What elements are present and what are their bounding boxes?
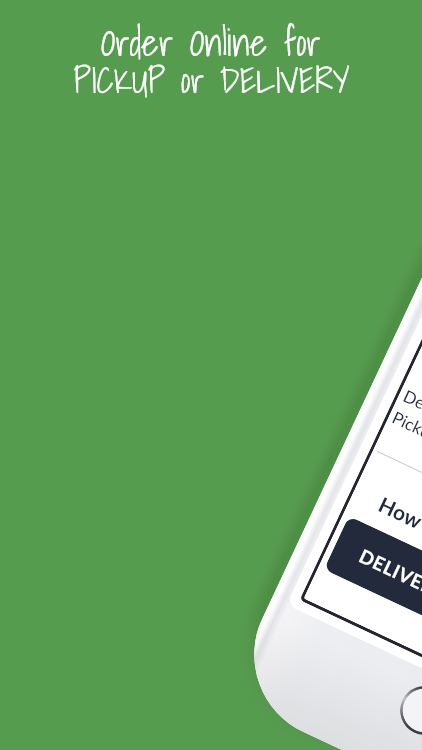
staticText: Delivery & Curbside xyxy=(400,385,422,467)
button[interactable]: Home xyxy=(393,678,422,742)
staticText: Order Online for xyxy=(101,13,321,72)
staticText: How would you like to order? xyxy=(375,491,422,630)
staticText: Pickup Available! xyxy=(389,406,422,478)
button[interactable]: DELIVERY xyxy=(324,516,422,631)
staticText: DELIVERY xyxy=(356,544,422,604)
staticText: PICKUP or DELIVERY xyxy=(73,52,350,108)
